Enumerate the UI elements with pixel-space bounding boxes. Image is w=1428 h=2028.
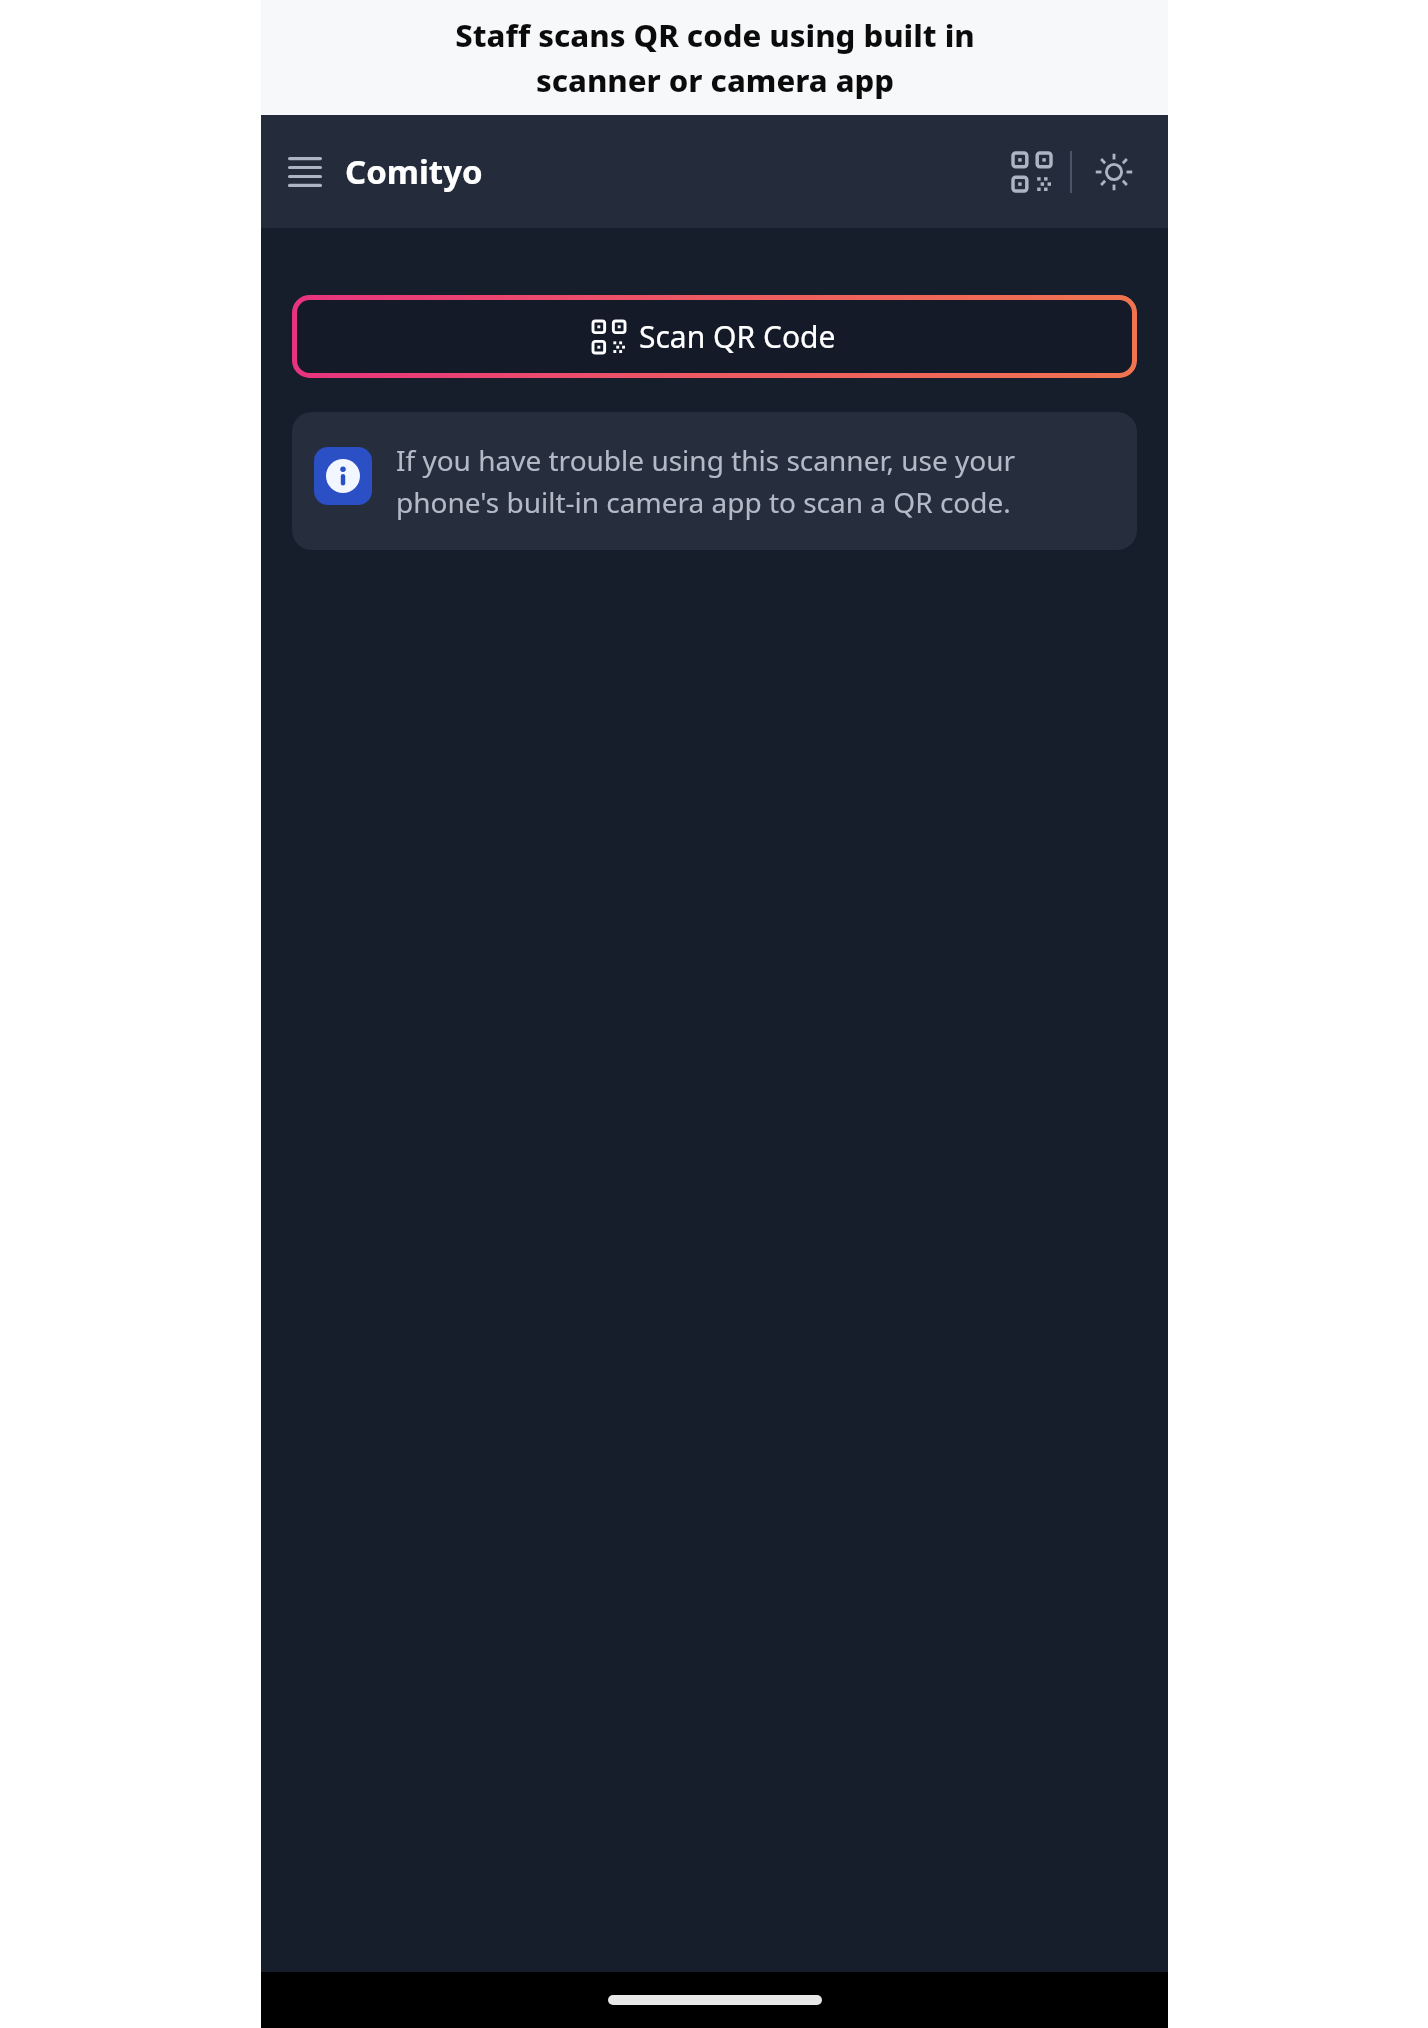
staticText: If you have trouble using this scanner, … bbox=[396, 441, 1115, 521]
staticText: Scan QR Code bbox=[639, 316, 836, 357]
button[interactable]: Menu bbox=[277, 144, 333, 200]
button[interactable]: Comityo bbox=[345, 149, 483, 194]
staticText: Staff scans QR code using built in scann… bbox=[455, 14, 975, 101]
button[interactable]: If you have trouble using this scanner, … bbox=[292, 412, 1137, 550]
button[interactable]: Scan QR Code bbox=[292, 295, 1137, 378]
button[interactable]: Toggle theme bbox=[1082, 140, 1146, 204]
button[interactable]: Scan QR code bbox=[1000, 140, 1064, 204]
